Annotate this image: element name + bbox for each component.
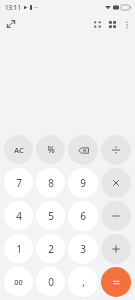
button[interactable]: Plus — [101, 234, 131, 264]
button[interactable]: 9 — [68, 168, 98, 198]
button[interactable]: Expand — [3, 16, 19, 32]
button[interactable]: Equals — [101, 267, 131, 297]
button[interactable]: 2 — [36, 234, 65, 263]
staticText: 7 — [16, 176, 22, 190]
button[interactable]: 8 — [36, 168, 65, 197]
button[interactable]: AC — [4, 135, 33, 164]
button[interactable]: Backspace — [68, 135, 98, 165]
button[interactable]: 6 — [68, 201, 98, 231]
staticText: , — [82, 275, 85, 289]
button[interactable]: 4 — [4, 201, 33, 230]
staticText: 00 — [14, 277, 23, 287]
button[interactable]: 0 — [36, 267, 65, 296]
button[interactable]: 3 — [68, 234, 98, 264]
button[interactable]: Scientific mode — [105, 17, 120, 32]
button[interactable]: 00 — [4, 267, 33, 296]
button[interactable]: 7 — [4, 168, 33, 197]
staticText: 2 — [48, 242, 54, 256]
staticText: AC — [14, 145, 24, 155]
button[interactable]: , — [68, 267, 98, 297]
button[interactable]: Multiply — [101, 168, 131, 198]
staticText: 6 — [80, 209, 86, 223]
staticText: 8 — [48, 176, 54, 190]
staticText: 1 — [16, 242, 22, 256]
staticText: 0 — [48, 275, 54, 289]
staticText: 3 — [80, 242, 86, 256]
button[interactable]: % — [36, 135, 65, 164]
button[interactable]: Divide — [101, 135, 131, 165]
button[interactable]: More options — [120, 18, 133, 31]
button[interactable]: 5 — [36, 201, 65, 230]
button[interactable]: 1 — [4, 234, 33, 263]
button[interactable]: Minus — [101, 201, 131, 231]
staticText: 9 — [80, 176, 86, 190]
staticText: 13:11 — [5, 3, 21, 11]
button[interactable]: Unit converter — [90, 17, 105, 32]
staticText: % — [47, 144, 55, 156]
staticText: 4 — [16, 209, 22, 223]
staticText: 5 — [48, 209, 54, 223]
